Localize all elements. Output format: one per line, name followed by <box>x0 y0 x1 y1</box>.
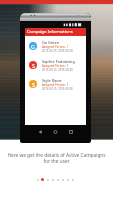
button[interactable]: Campaign Informations <box>25 28 86 36</box>
button[interactable] <box>55 177 60 182</box>
staticText: Assigned Person : 1 <box>42 45 69 49</box>
staticText: Campaign Informations <box>27 29 73 35</box>
staticText: 2015-09-15 2015-09-30 <box>42 68 73 72</box>
button[interactable] <box>65 177 70 182</box>
staticText: 2015-09-15 2015-09-30 <box>42 87 73 91</box>
button[interactable] <box>45 177 50 182</box>
staticText: Assigned Person : 1 <box>42 83 69 87</box>
button[interactable] <box>40 177 45 182</box>
button[interactable] <box>60 177 65 182</box>
staticText: Style Racer <box>42 78 62 83</box>
button[interactable] <box>70 177 75 182</box>
staticText: Sapfire Fudraising <box>42 59 75 64</box>
staticText: Assigned Person : 1 <box>42 64 69 68</box>
staticText: S <box>32 62 35 69</box>
button[interactable]: S <box>25 74 86 93</box>
button[interactable]: G <box>25 36 86 55</box>
staticText: Here we get the details of Active Campai… <box>0 152 113 164</box>
button[interactable] <box>35 177 40 182</box>
staticText: Go Green <box>42 40 60 45</box>
staticText: S <box>32 81 35 88</box>
button[interactable] <box>50 177 55 182</box>
button[interactable]: S <box>25 55 86 74</box>
staticText: G <box>31 43 35 50</box>
staticText: 2015-09-15 2015-09-30 <box>42 49 73 53</box>
